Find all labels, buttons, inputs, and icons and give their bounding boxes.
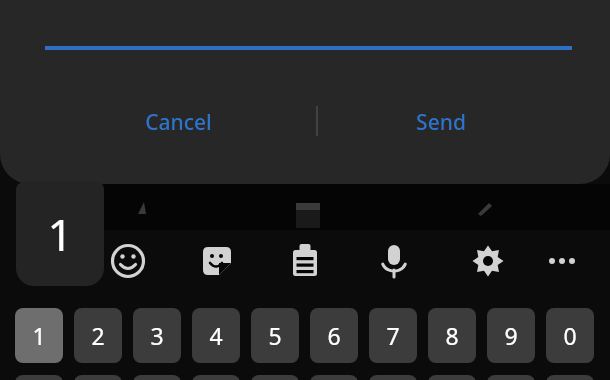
staticText: 7	[386, 320, 400, 351]
staticText: 9	[504, 320, 518, 351]
button[interactable]: 3	[133, 308, 181, 363]
button[interactable]: Cancel	[108, 100, 248, 144]
button[interactable]: Stickers	[193, 237, 241, 285]
button[interactable]: 7	[369, 308, 417, 363]
staticText: 3	[150, 320, 164, 351]
staticText: 8	[445, 320, 459, 351]
button[interactable]: More options	[538, 237, 586, 285]
button[interactable]: Voice input	[370, 237, 418, 285]
staticText: 5	[268, 320, 282, 351]
button[interactable]: 4	[192, 308, 240, 363]
button[interactable]: Clipboard	[281, 237, 329, 285]
button[interactable]: Emoji	[104, 237, 152, 285]
button[interactable]: 9	[487, 308, 535, 363]
button[interactable]: 2	[74, 308, 122, 363]
button[interactable]: 1	[15, 308, 63, 363]
staticText: Cancel	[145, 108, 212, 137]
button[interactable]: 6	[310, 308, 358, 363]
staticText: 1	[47, 204, 73, 264]
staticText: 2	[91, 320, 105, 351]
staticText: 6	[327, 320, 341, 351]
button[interactable]: Settings	[464, 237, 512, 285]
staticText: 1	[32, 320, 46, 351]
button[interactable]: Send	[371, 100, 511, 144]
button[interactable]: 5	[251, 308, 299, 363]
button[interactable]: 8	[428, 308, 476, 363]
staticText: 0	[563, 320, 577, 351]
button[interactable]: 0	[546, 308, 594, 363]
staticText: Send	[416, 108, 466, 137]
staticText: 4	[209, 320, 223, 351]
